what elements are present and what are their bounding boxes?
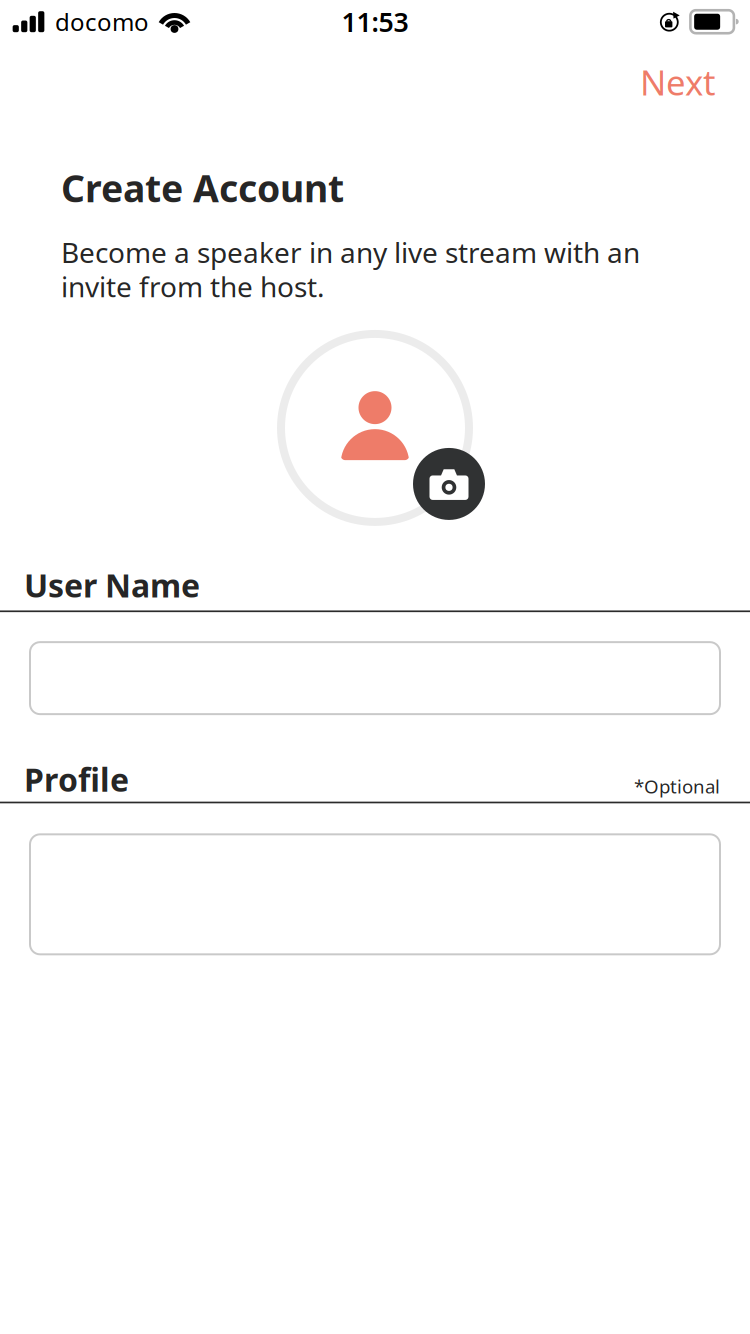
staticText: docomo [55, 6, 149, 38]
button[interactable]: Text field [30, 834, 720, 954]
staticText: Become a speaker in any live stream with… [61, 234, 640, 305]
button[interactable]: Next [606, 39, 750, 125]
staticText: User Name [24, 564, 200, 606]
staticText: *Optional [634, 774, 720, 799]
staticText: Create Account [61, 163, 344, 213]
button[interactable]: Change profile photo [271, 330, 479, 526]
staticText: Next [640, 59, 716, 105]
staticText: 11:53 [341, 4, 408, 39]
button[interactable]: Text field [30, 642, 720, 714]
staticText: Profile [24, 758, 129, 801]
